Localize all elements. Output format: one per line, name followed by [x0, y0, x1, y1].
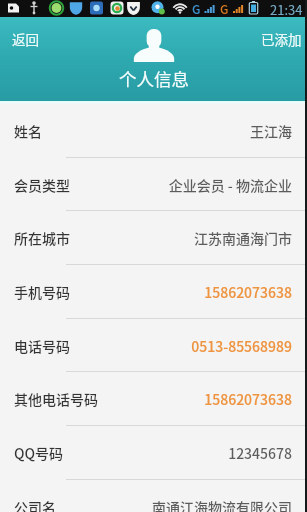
- staticText: 南通江海物流有限公司: [64, 497, 292, 512]
- other: Status bar: [0, 0, 307, 17]
- staticText: 15862073638: [106, 389, 292, 409]
- staticText: 21:34: [270, 0, 303, 17]
- button[interactable]: 其他电话号码: [0, 372, 307, 425]
- staticText: 企业会员 - 物流企业: [78, 175, 292, 195]
- button[interactable]: 姓名: [0, 104, 307, 157]
- staticText: 电话号码: [14, 336, 70, 356]
- button[interactable]: 所在城市: [0, 211, 307, 264]
- staticText: G: [220, 0, 229, 17]
- staticText: 12345678: [72, 443, 292, 463]
- staticText: 江苏南通海门市: [78, 228, 292, 248]
- staticText: QQ号码: [14, 443, 64, 463]
- staticText: 会员类型: [14, 175, 70, 195]
- staticText: 姓名: [14, 121, 42, 141]
- button[interactable]: 电话号码: [0, 319, 307, 372]
- staticText: 所在城市: [14, 228, 70, 248]
- button[interactable]: QQ号码: [0, 426, 307, 479]
- button[interactable]: 返回: [0, 17, 53, 59]
- staticText: G: [192, 0, 201, 17]
- button[interactable]: 手机号码: [0, 265, 307, 318]
- button[interactable]: 会员类型: [0, 158, 307, 211]
- staticText: 其他电话号码: [14, 389, 98, 409]
- staticText: 公司名: [14, 497, 56, 512]
- staticText: 个人信息: [119, 66, 189, 91]
- button[interactable]: 公司名: [0, 480, 307, 512]
- staticText: 15862073638: [78, 282, 292, 302]
- staticText: 0513-85568989: [78, 336, 292, 356]
- button[interactable]: 已添加: [247, 17, 307, 59]
- staticText: 手机号码: [14, 282, 70, 302]
- staticText: 王江海: [50, 121, 292, 141]
- other: Profile avatar: [133, 29, 175, 62]
